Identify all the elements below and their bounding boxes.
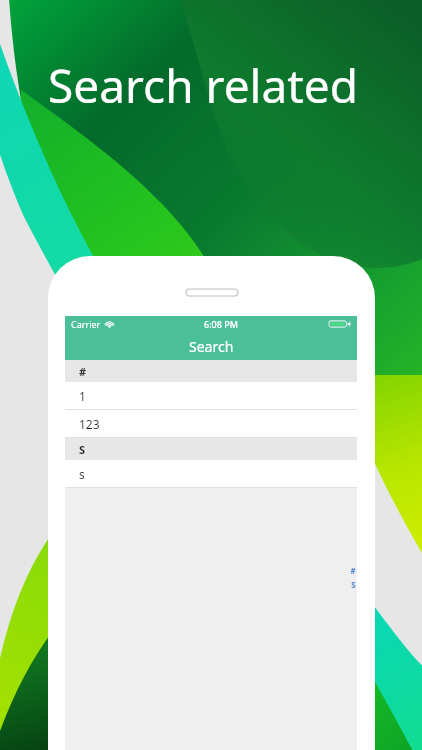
staticText: # [79,364,87,379]
staticText: 6:08 PM [204,318,238,330]
button[interactable]: s [65,460,357,488]
staticText: S [79,442,86,457]
staticText: Carrier [71,318,101,330]
staticText: 123 [79,416,100,432]
staticText: Search [189,337,234,356]
staticText: s [79,466,85,482]
staticText: S [351,579,356,590]
button[interactable]: 123 [65,410,357,438]
button[interactable]: # [65,360,357,382]
button[interactable]: S [65,438,357,460]
staticText: Search related [48,54,359,117]
staticText: 1 [79,388,86,404]
button[interactable]: Section index [346,565,360,590]
staticText: # [350,565,356,576]
button[interactable]: 1 [65,382,357,410]
